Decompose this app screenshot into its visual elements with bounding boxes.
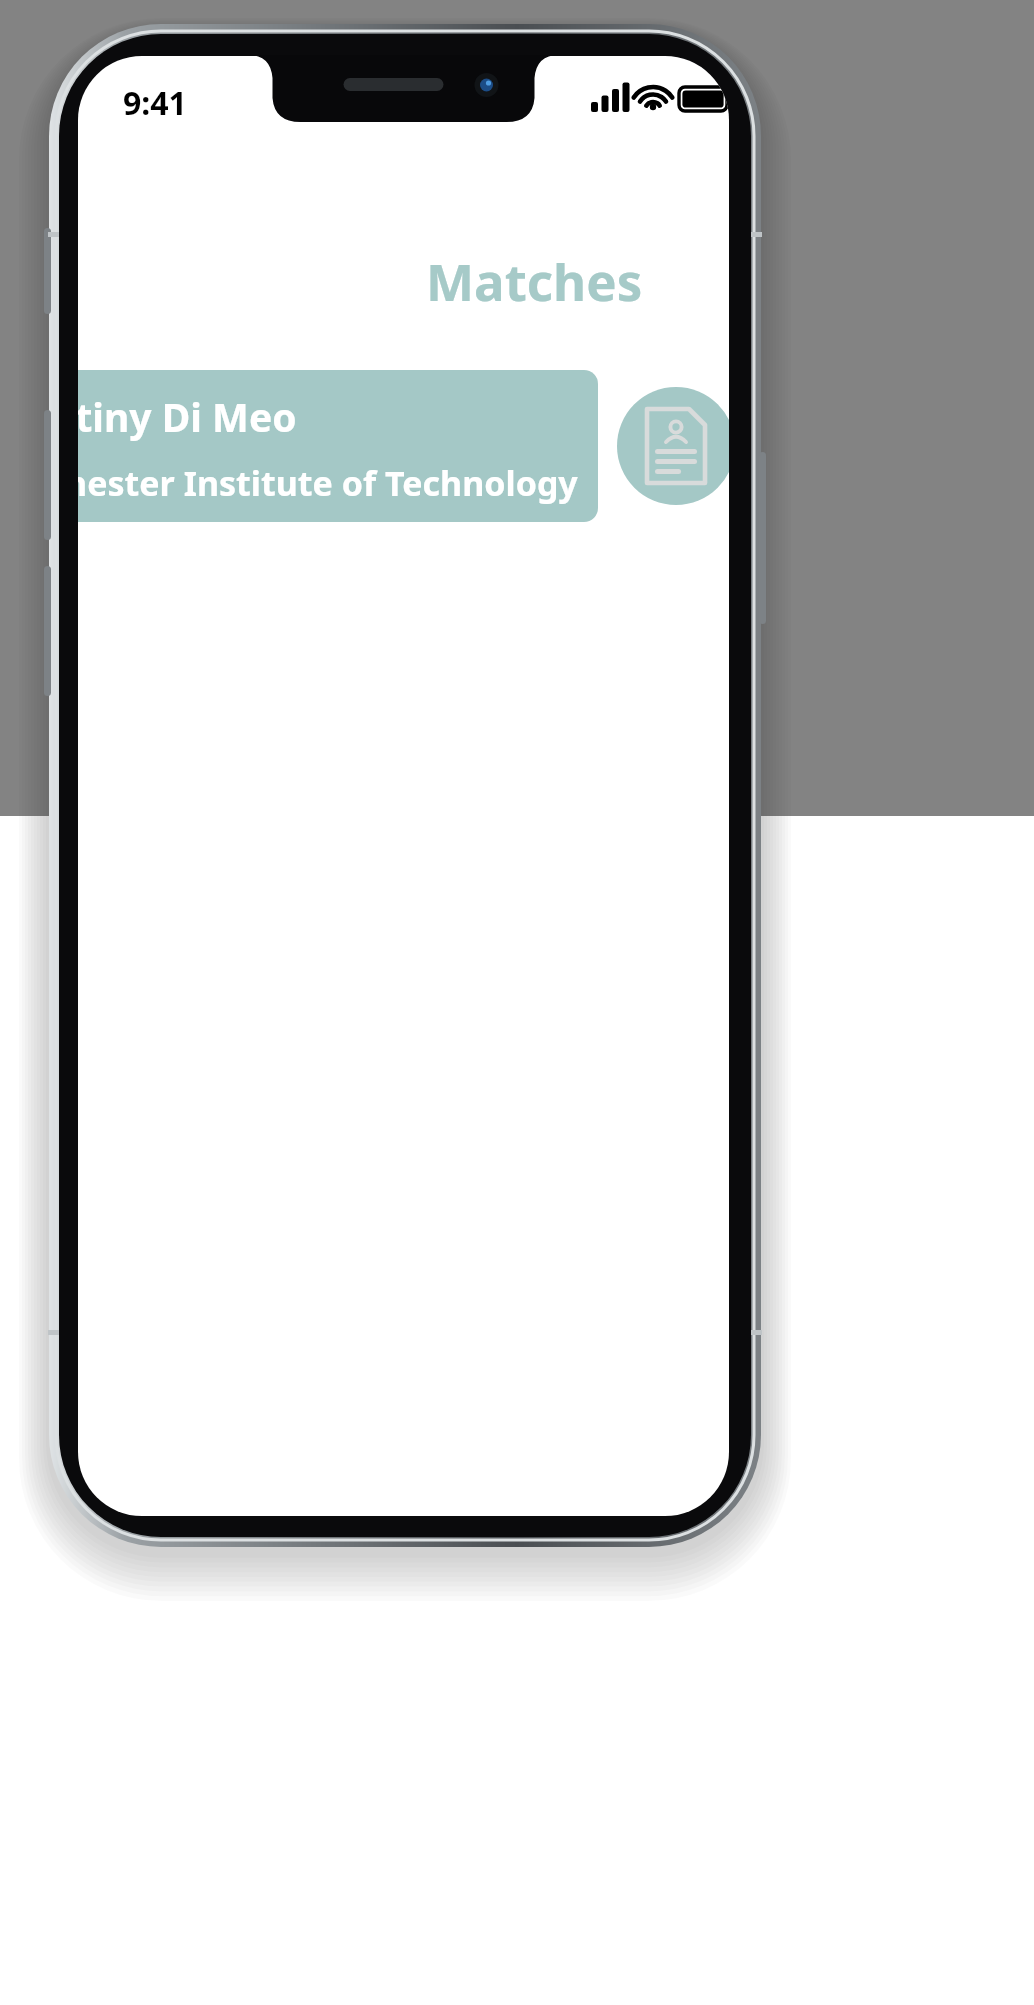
button[interactable]: Destiny Di Meo — [78, 370, 598, 522]
staticText: Matches — [426, 246, 643, 315]
button[interactable]: Resume — [617, 387, 729, 505]
staticText: Destiny Di Meo — [78, 390, 297, 443]
staticText: Rochester Institute of Technology — [78, 460, 578, 506]
staticText: 9:41 — [123, 81, 187, 125]
